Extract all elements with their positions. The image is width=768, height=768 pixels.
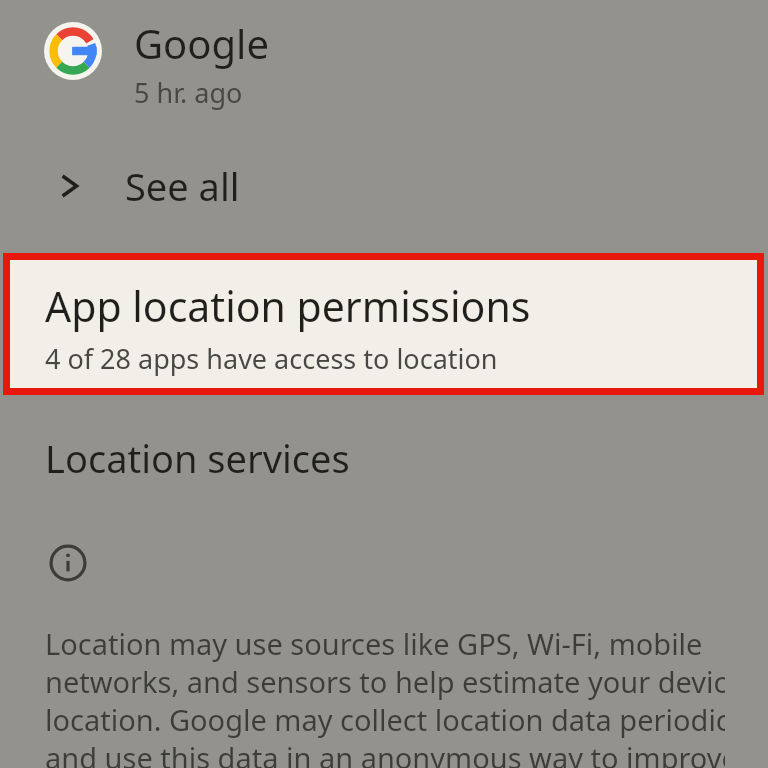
button[interactable]: Google	[0, 8, 768, 119]
staticText: Location may use sources like GPS, Wi-Fi…	[45, 624, 703, 662]
staticText: and use this data in an anonymous way to…	[45, 738, 725, 768]
other: Information	[49, 544, 87, 582]
staticText: networks, and sensors to help estimate y…	[45, 662, 725, 700]
staticText: 5 hr. ago	[134, 74, 243, 111]
staticText: See all	[125, 160, 240, 212]
staticText: Location services	[45, 432, 350, 484]
staticText: App location permissions	[45, 278, 531, 334]
button[interactable]: Expand	[0, 150, 768, 222]
staticText: Google	[134, 16, 269, 70]
staticText: location. Google may collect location da…	[45, 700, 725, 738]
button[interactable]: App location permissions	[10, 260, 757, 388]
other: Expand	[55, 171, 85, 201]
staticText: 4 of 28 apps have access to location	[45, 340, 498, 377]
